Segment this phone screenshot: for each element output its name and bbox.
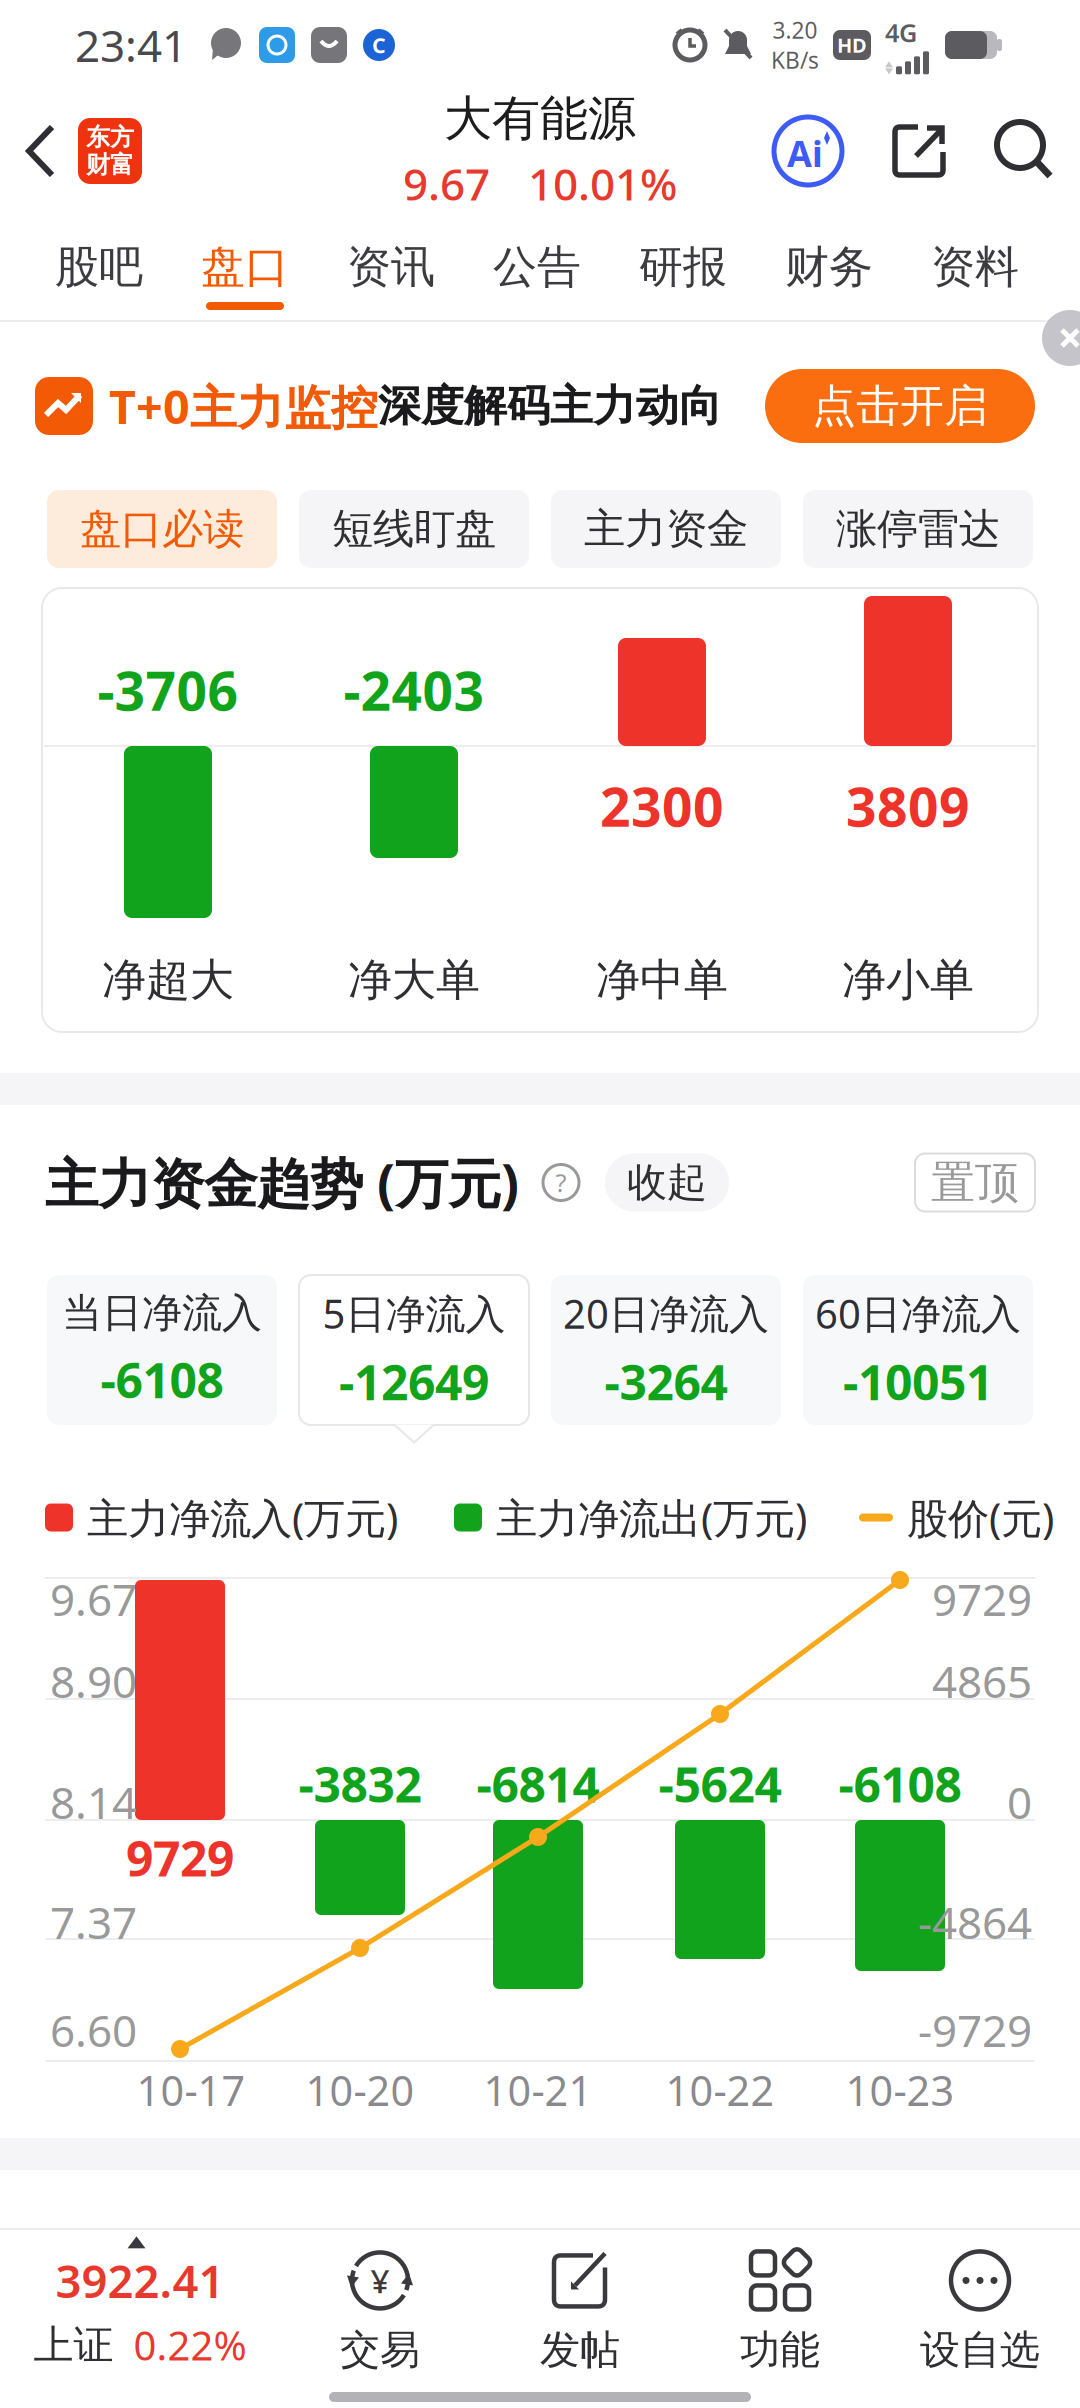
staticText: 0 bbox=[1007, 1773, 1032, 1831]
staticText: HD bbox=[837, 32, 867, 58]
staticText: -3832 bbox=[298, 1752, 421, 1816]
staticText: ¥ bbox=[370, 2258, 389, 2303]
button[interactable]: 20日净流入 bbox=[551, 1275, 781, 1425]
staticText: 财富 bbox=[86, 150, 134, 179]
staticText: 盘口必读 bbox=[80, 504, 244, 554]
staticText: -9729 bbox=[918, 2001, 1032, 2059]
staticText: 3922.41 bbox=[55, 2250, 224, 2310]
staticText: -3706 bbox=[97, 655, 238, 725]
button[interactable]: AI assistant bbox=[772, 115, 844, 187]
staticText: 设自选 bbox=[920, 2325, 1040, 2374]
button[interactable]: Back bbox=[0, 122, 60, 180]
button[interactable]: 当日净流入 bbox=[47, 1275, 277, 1425]
button[interactable]: 股吧 bbox=[55, 212, 143, 322]
staticText: 净大单 bbox=[348, 953, 480, 1007]
button[interactable]: 主力资金 bbox=[551, 490, 781, 568]
staticText: 6.60 bbox=[50, 2001, 137, 2059]
staticText: 7.37 bbox=[50, 1893, 137, 1951]
staticText: 点击开启 bbox=[812, 379, 988, 433]
staticText: -10051 bbox=[843, 1350, 993, 1413]
staticText: 10-20 bbox=[305, 2063, 414, 2117]
staticText: 置顶 bbox=[931, 1155, 1019, 1209]
staticText: 0.22% bbox=[133, 2318, 246, 2372]
button[interactable]: 收起 bbox=[605, 1153, 729, 1211]
staticText: 交易 bbox=[340, 2325, 420, 2374]
button[interactable]: ¥ bbox=[280, 2230, 480, 2408]
staticText: 9729 bbox=[932, 1570, 1032, 1628]
staticText: 当日净流入 bbox=[62, 1289, 262, 1338]
staticText: 东方 bbox=[86, 122, 134, 152]
staticText: 盘口 bbox=[201, 240, 289, 294]
button[interactable]: 资料 bbox=[931, 212, 1019, 322]
button[interactable]: 盘口 bbox=[201, 212, 289, 322]
staticText: 净中单 bbox=[596, 953, 728, 1007]
staticText: 净超大 bbox=[102, 953, 234, 1007]
staticText: 10.01% bbox=[528, 154, 677, 213]
button[interactable]: 财务 bbox=[785, 212, 873, 322]
staticText: -5624 bbox=[658, 1752, 781, 1816]
staticText: 60日净流入 bbox=[815, 1287, 1021, 1340]
button[interactable]: 发帖 bbox=[480, 2230, 680, 2408]
staticText: 大有能源 bbox=[444, 89, 636, 148]
button[interactable]: Share bbox=[888, 120, 950, 182]
staticText: -4864 bbox=[918, 1893, 1032, 1951]
staticText: 9.67 bbox=[50, 1570, 137, 1628]
button[interactable]: 功能 bbox=[680, 2230, 880, 2408]
staticText: 资料 bbox=[931, 240, 1019, 294]
staticText: 净小单 bbox=[842, 953, 974, 1007]
button[interactable]: Search bbox=[996, 121, 1080, 181]
staticText: 10-17 bbox=[136, 2063, 245, 2117]
button[interactable]: 5日净流入 bbox=[299, 1275, 529, 1425]
button[interactable]: 公告 bbox=[493, 212, 581, 322]
button[interactable]: 60日净流入 bbox=[803, 1275, 1033, 1425]
staticText: -12649 bbox=[339, 1350, 489, 1413]
staticText: 主力净流入(万元) bbox=[87, 1490, 398, 1545]
staticText: 短线盯盘 bbox=[332, 504, 496, 554]
staticText: 涨停雷达 bbox=[836, 504, 1000, 554]
staticText: 9729 bbox=[126, 1826, 234, 1890]
staticText: -6108 bbox=[838, 1752, 961, 1816]
staticText: 财务 bbox=[785, 240, 873, 294]
button[interactable]: Close banner bbox=[1024, 322, 1080, 378]
staticText: -6814 bbox=[476, 1752, 599, 1816]
staticText: ? bbox=[555, 1166, 566, 1199]
staticText: 8.14 bbox=[50, 1773, 137, 1831]
staticText: -6108 bbox=[100, 1348, 223, 1411]
button[interactable]: 置顶 bbox=[915, 1153, 1035, 1211]
staticText: 上证 bbox=[33, 2320, 113, 2370]
staticText: 20日净流入 bbox=[563, 1287, 769, 1340]
staticText: KB/s bbox=[771, 45, 819, 75]
staticText: 23:41 bbox=[75, 16, 187, 74]
button[interactable]: East Money bbox=[60, 118, 142, 184]
staticText: 10-21 bbox=[483, 2063, 592, 2117]
button[interactable]: 上证指数 bbox=[0, 2230, 280, 2408]
staticText: 收起 bbox=[627, 1158, 707, 1207]
staticText: 研报 bbox=[639, 240, 727, 294]
staticText: 2300 bbox=[600, 771, 724, 841]
staticText: C bbox=[372, 31, 386, 59]
staticText: 10-22 bbox=[665, 2063, 774, 2117]
staticText: 股价(元) bbox=[907, 1490, 1054, 1545]
button[interactable]: 资讯 bbox=[347, 212, 435, 322]
button[interactable]: 设自选 bbox=[880, 2230, 1080, 2408]
button[interactable]: 涨停雷达 bbox=[803, 490, 1033, 568]
staticText: 4865 bbox=[932, 1652, 1032, 1710]
staticText: 4G bbox=[885, 16, 917, 49]
staticText: 资讯 bbox=[347, 240, 435, 294]
button[interactable]: 短线盯盘 bbox=[299, 490, 529, 568]
staticText: 3809 bbox=[846, 771, 970, 841]
staticText: 主力净流出(万元) bbox=[496, 1490, 807, 1545]
staticText: 主力资金 bbox=[584, 504, 748, 554]
staticText: Ai bbox=[787, 129, 823, 177]
button[interactable]: 点击开启 bbox=[765, 369, 1035, 443]
button[interactable]: 研报 bbox=[639, 212, 727, 322]
button[interactable]: 帮助 bbox=[543, 1164, 579, 1200]
staticText: 9.67 bbox=[403, 154, 490, 213]
staticText: 公告 bbox=[493, 240, 581, 294]
button[interactable]: 盘口必读 bbox=[47, 490, 277, 568]
staticText: 5日净流入 bbox=[322, 1287, 505, 1340]
staticText: 10-23 bbox=[845, 2063, 954, 2117]
staticText: 8.90 bbox=[50, 1652, 137, 1710]
staticText: 3.20 bbox=[772, 15, 817, 45]
staticText: 主力资金趋势 (万元) bbox=[45, 1147, 519, 1218]
